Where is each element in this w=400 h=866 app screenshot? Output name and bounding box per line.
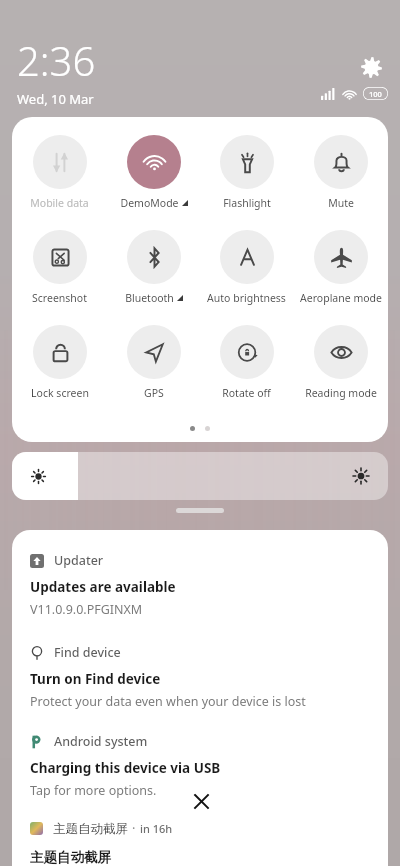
staticText: Mobile data: [30, 196, 89, 210]
button[interactable]: Find device: [12, 644, 388, 710]
staticText: 主题自动截屏: [30, 849, 111, 866]
button[interactable]: Settings: [354, 50, 388, 84]
staticText: Rotate off: [222, 386, 271, 400]
button[interactable]: Bluetooth: [108, 230, 199, 305]
staticText: ·: [132, 820, 136, 837]
button[interactable]: Auto brightness: [201, 230, 292, 305]
staticText: Screenshot: [32, 291, 87, 305]
staticText: Wed, 10 Mar: [17, 90, 94, 108]
staticText: V11.0.9.0.PFGINXM: [30, 601, 143, 618]
staticText: Android system: [54, 733, 148, 750]
staticText: GPS: [144, 386, 164, 400]
staticText: 100: [369, 89, 382, 99]
staticText: Updates are available: [30, 578, 176, 596]
staticText: 主题自动截屏: [53, 821, 128, 837]
button[interactable]: [12, 452, 388, 500]
staticText: Updater: [54, 552, 104, 569]
button[interactable]: 主题自动截屏: [30, 820, 388, 837]
staticText: 2:36: [17, 33, 96, 87]
button[interactable]: [176, 508, 224, 513]
staticText: Lock screen: [31, 386, 89, 400]
button[interactable]: Screenshot: [14, 230, 105, 305]
button[interactable]: Mute: [295, 135, 386, 210]
button[interactable]: Reading mode: [295, 325, 386, 400]
staticText: Flashlight: [223, 196, 271, 210]
staticText: Aeroplane mode: [300, 291, 382, 305]
staticText: Bluetooth: [125, 291, 174, 305]
button[interactable]: Android system: [12, 733, 388, 799]
staticText: Mute: [328, 196, 354, 210]
staticText: Reading mode: [305, 386, 377, 400]
staticText: Turn on Find device: [30, 670, 161, 688]
button[interactable]: GPS: [108, 325, 199, 400]
button[interactable]: DemoMode: [108, 135, 199, 210]
button[interactable]: Lock screen: [14, 325, 105, 400]
button[interactable]: Updater: [12, 552, 388, 618]
button[interactable]: Mobile data: [14, 135, 105, 210]
staticText: Tap for more options.: [30, 782, 157, 799]
button[interactable]: Clear all notifications: [179, 779, 223, 823]
staticText: Find device: [54, 644, 121, 661]
staticText: DemoMode: [120, 196, 179, 210]
button[interactable]: Aeroplane mode: [295, 230, 386, 305]
staticText: Auto brightness: [207, 291, 286, 305]
button[interactable]: Flashlight: [201, 135, 292, 210]
staticText: Charging this device via USB: [30, 759, 221, 777]
staticText: in 16h: [140, 821, 173, 836]
button[interactable]: Rotate off: [201, 325, 292, 400]
staticText: Protect your data even when your device …: [30, 693, 306, 710]
